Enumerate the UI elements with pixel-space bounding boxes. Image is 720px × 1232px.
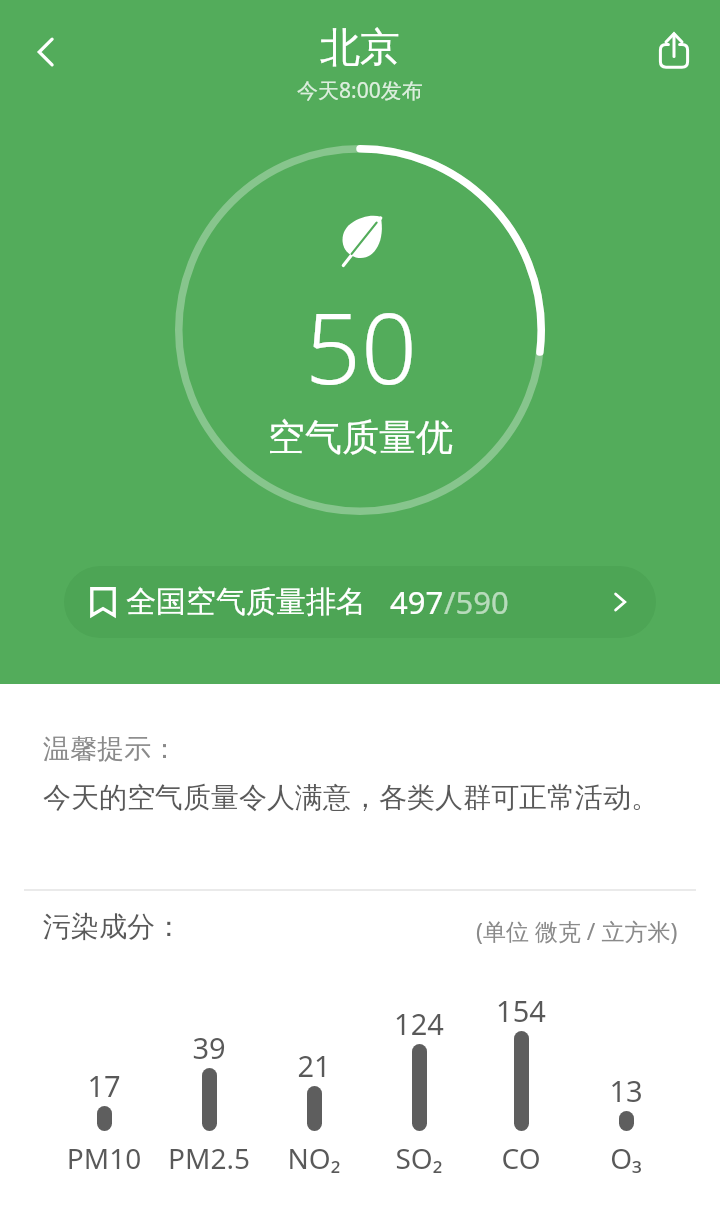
staticText: (单位 微克 / 立方米) [476, 915, 678, 946]
staticText: 空气质量优 [268, 414, 453, 461]
staticText: 50 [305, 279, 417, 412]
staticText: 全国空气质量排名 [126, 583, 366, 621]
staticText: NO₂ [262, 1139, 366, 1177]
button[interactable]: Share [644, 20, 704, 80]
staticText: SO₂ [367, 1139, 471, 1177]
staticText: 124 [367, 1004, 471, 1043]
staticText: 21 [262, 1046, 366, 1085]
staticText: 北京 [320, 22, 400, 72]
staticText: CO [469, 1139, 573, 1177]
staticText: PM10 [52, 1139, 156, 1177]
button[interactable]: 全国空气质量排名 [64, 566, 656, 638]
staticText: 13 [574, 1071, 678, 1110]
staticText: 今天8:00发布 [297, 76, 423, 105]
staticText: 39 [157, 1028, 261, 1067]
staticText: 154 [469, 991, 573, 1030]
button[interactable]: Back [16, 22, 76, 82]
staticText: 17 [52, 1066, 156, 1105]
staticText: 497 [390, 581, 444, 623]
staticText: 污染成分： [43, 909, 183, 944]
staticText: PM2.5 [157, 1139, 261, 1177]
staticText: O₃ [574, 1139, 678, 1177]
staticText: 温馨提示： [43, 732, 178, 766]
staticText: 今天的空气质量令人满意，各类人群可正常活动。 [43, 780, 659, 815]
staticText: /590 [444, 581, 509, 623]
